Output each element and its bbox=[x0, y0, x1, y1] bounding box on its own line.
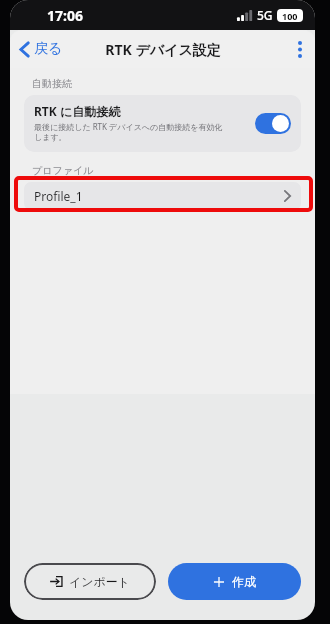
staticText: 最後に接続した RTK デバイスへの自動接続を有効化 します。 bbox=[34, 121, 223, 143]
button[interactable]: Profile_1 bbox=[24, 182, 301, 210]
staticText: 作成 bbox=[232, 574, 256, 589]
button[interactable]: More options bbox=[285, 30, 315, 68]
staticText: RTK デバイス設定 bbox=[105, 40, 221, 59]
staticText: インポート bbox=[69, 574, 131, 589]
button[interactable]: 戻る bbox=[10, 34, 71, 64]
button[interactable]: Auto connect toggle bbox=[255, 113, 291, 134]
button[interactable]: 作成 bbox=[168, 563, 301, 600]
staticText: Profile_1 bbox=[34, 188, 284, 204]
staticText: 戻る bbox=[34, 40, 63, 58]
staticText: 100 bbox=[282, 10, 298, 22]
staticText: RTK に自動接続 bbox=[34, 103, 121, 119]
staticText: 5G bbox=[257, 7, 273, 23]
button[interactable]: RTK に自動接続 bbox=[24, 95, 301, 152]
staticText: 17:06 bbox=[47, 6, 83, 25]
staticText: 自動接続 bbox=[32, 77, 72, 90]
button[interactable]: インポート bbox=[24, 563, 156, 600]
staticText: プロファイル bbox=[32, 164, 94, 177]
